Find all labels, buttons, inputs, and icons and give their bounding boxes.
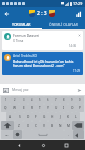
staticText: 8 [63,98,65,102]
staticText: G [43,115,46,119]
staticText: Q [4,106,7,110]
staticText: H [51,115,54,119]
button[interactable]: Y [44,104,52,112]
button[interactable]: J [56,112,64,121]
button[interactable]: O [68,104,76,112]
button[interactable]: Q [1,104,10,112]
staticText: YORUMLAR [12,22,31,27]
button[interactable]: Recent apps [61,140,71,150]
button[interactable]: 9 [68,96,76,104]
staticText: S [19,115,21,119]
button[interactable]: Send [75,86,83,94]
staticText: Y [47,106,49,110]
button[interactable]: 2 : 3 [29,10,55,17]
button[interactable]: Settings [13,130,22,139]
staticText: K [67,115,70,119]
button[interactable]: 4 [28,96,36,104]
staticText: B [51,124,54,128]
staticText: 0 [79,98,81,102]
staticText: J [60,115,61,119]
staticText: Mesaj yaz [12,87,29,92]
staticText: ÖNEMLİ OLAYLAR [49,22,78,27]
button[interactable]: 7 [52,96,60,104]
staticText: 17:29 [73,1,83,6]
button[interactable]: R [28,104,36,112]
button[interactable]: Statistics [72,7,85,20]
button[interactable]: Formun Dияseri [2,31,83,50]
staticText: 17:29 [73,69,81,73]
button[interactable]: F [32,112,40,121]
staticText: N [59,124,62,128]
staticText: Z [18,124,20,128]
button[interactable]: Home [38,140,48,150]
button[interactable]: 1 [1,96,10,104]
button[interactable]: V [40,121,48,130]
staticText: M [67,124,70,128]
staticText: !#1 [5,133,9,136]
button[interactable]: Backspace [72,121,84,130]
button[interactable]: X [23,121,32,130]
button[interactable]: T [36,104,44,112]
button[interactable]: I [60,104,68,112]
staticText: R [31,106,34,110]
staticText: W [13,106,16,110]
staticText: 5 [39,98,41,102]
button[interactable]: W [10,104,19,112]
staticText: E [23,106,25,110]
button[interactable]: M [64,121,72,130]
staticText: 7 [55,98,57,102]
button[interactable]: 8 [60,96,68,104]
button[interactable]: N [56,121,64,130]
button[interactable]: C [32,121,40,130]
button[interactable]: ÖNEMLİ OLAYLAR [42,20,85,28]
button[interactable]: P [76,104,84,112]
button[interactable]: K [64,112,72,121]
button[interactable]: Shift [1,121,14,130]
button[interactable]: Back [14,140,24,150]
staticText: U [55,106,58,110]
button[interactable]: Attach image [2,86,10,94]
staticText: 2 : 3 [37,10,47,17]
staticText: Bohasdhood iri çOk huzunün'an bahis foru… [13,59,74,68]
button[interactable]: Mesaj yaz [12,87,75,92]
staticText: V [43,124,45,128]
button[interactable]: D [24,112,32,121]
button[interactable]: YORUMLAR [0,20,42,28]
button[interactable]: 3 [19,96,28,104]
staticText: 4 [31,98,33,102]
staticText: T [39,106,41,110]
staticText: 9 [71,98,73,102]
staticText: Ariol Trobln+KO [13,54,37,58]
button[interactable]: Enter [73,130,84,139]
staticText: . [68,133,69,137]
staticText: 14:36 [69,44,77,48]
button[interactable]: Space [22,130,64,139]
button[interactable]: U [52,104,60,112]
staticText: L [75,115,77,119]
button[interactable]: 0 [76,96,84,104]
button[interactable]: 2 [10,96,19,104]
button[interactable]: S [15,112,24,121]
staticText: 1 [5,98,7,102]
button[interactable]: H [48,112,56,121]
button[interactable]: 5 [36,96,44,104]
button[interactable]: A [6,112,15,121]
staticText: Formun Dияseri [13,33,40,38]
button[interactable]: E [19,104,28,112]
staticText: D [27,115,30,119]
staticText: O [71,106,74,110]
staticText: X [27,124,29,128]
button[interactable]: !#1 [1,130,13,139]
staticText: C [35,124,38,128]
staticText: 2 [14,98,16,102]
staticText: F [35,115,37,119]
button[interactable]: Back [0,7,13,20]
button[interactable]: L [72,112,80,121]
button[interactable]: 6 [44,96,52,104]
button[interactable]: More options [77,33,81,37]
button[interactable]: Ariol Trobln+KO [2,52,83,75]
button[interactable]: B [48,121,56,130]
button[interactable]: Z [14,121,23,130]
button[interactable]: G [40,112,48,121]
